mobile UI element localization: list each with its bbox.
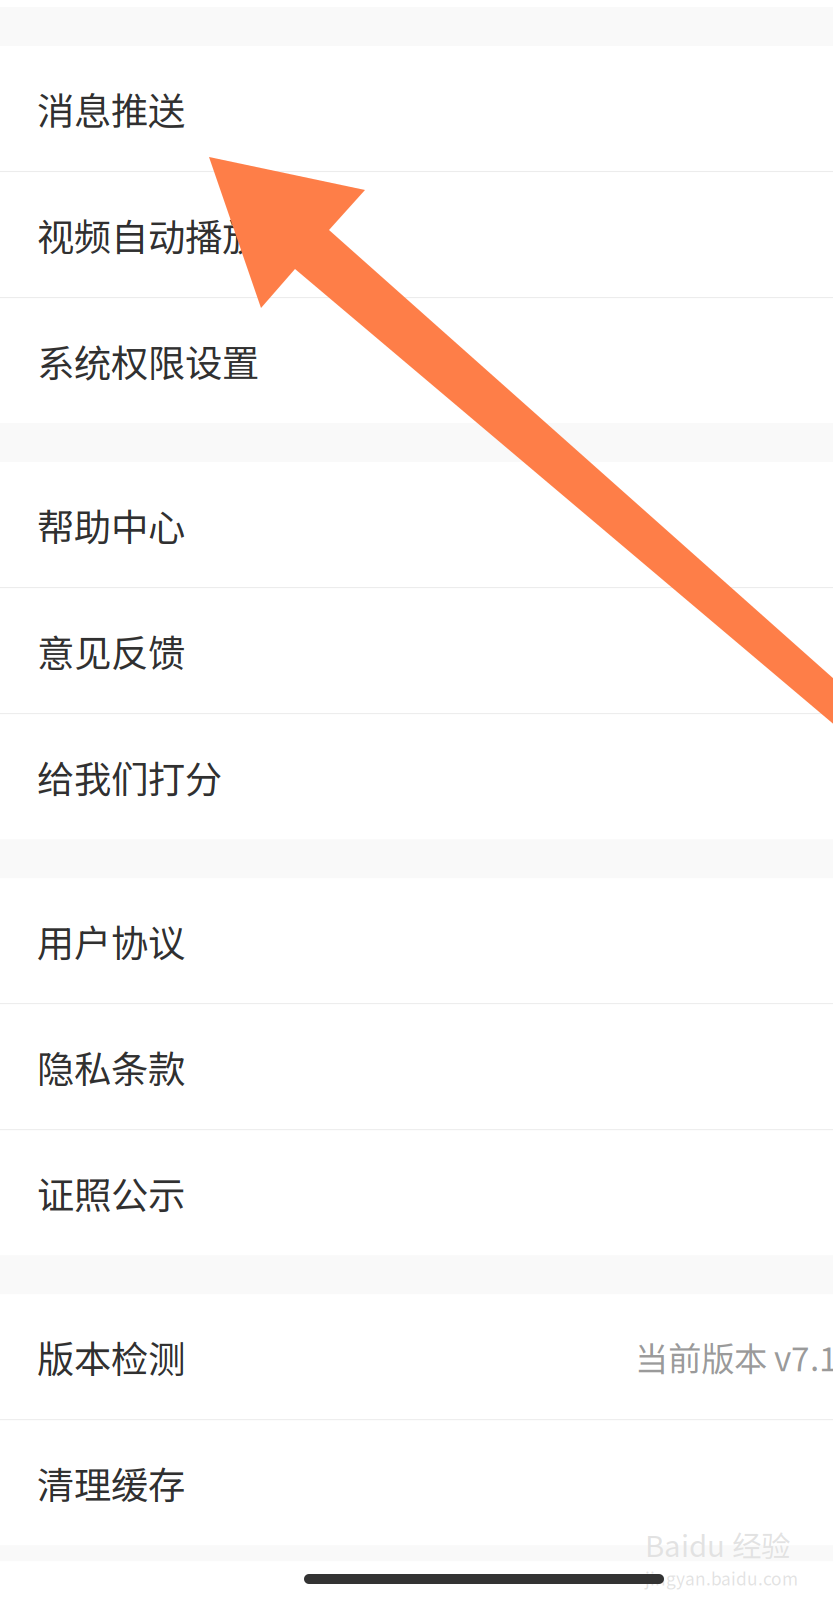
- button[interactable]: 版本检测: [0, 1294, 833, 1419]
- button[interactable]: 系统权限设置: [0, 298, 833, 423]
- button[interactable]: 帮助中心: [0, 462, 833, 587]
- button[interactable]: 清理缓存: [0, 1420, 833, 1545]
- staticText: 给我们打分: [37, 750, 222, 804]
- button[interactable]: 意见反馈: [0, 588, 833, 713]
- staticText: 消息推送: [37, 81, 185, 136]
- staticText: 隐私条款: [37, 1040, 185, 1094]
- staticText: jingyan.baidu.com: [645, 1565, 798, 1591]
- staticText: 帮助中心: [37, 498, 185, 552]
- staticText: Baidu 经验: [645, 1523, 790, 1565]
- staticText: 视频自动播放: [37, 208, 259, 262]
- staticText: 用户协议: [37, 914, 185, 968]
- button[interactable]: 视频自动播放: [0, 172, 833, 297]
- staticText: 系统权限设置: [37, 334, 259, 388]
- staticText: 版本检测: [37, 1330, 185, 1384]
- button[interactable]: 消息推送: [0, 46, 833, 171]
- button[interactable]: 给我们打分: [0, 714, 833, 839]
- staticText: 意见反馈: [37, 624, 185, 678]
- button[interactable]: 用户协议: [0, 878, 833, 1003]
- button[interactable]: 证照公示: [0, 1130, 833, 1255]
- staticText: 当前版本 v7.1.0: [635, 1333, 833, 1381]
- staticText: 清理缓存: [37, 1456, 185, 1510]
- button[interactable]: 隐私条款: [0, 1004, 833, 1129]
- staticText: 证照公示: [37, 1166, 185, 1220]
